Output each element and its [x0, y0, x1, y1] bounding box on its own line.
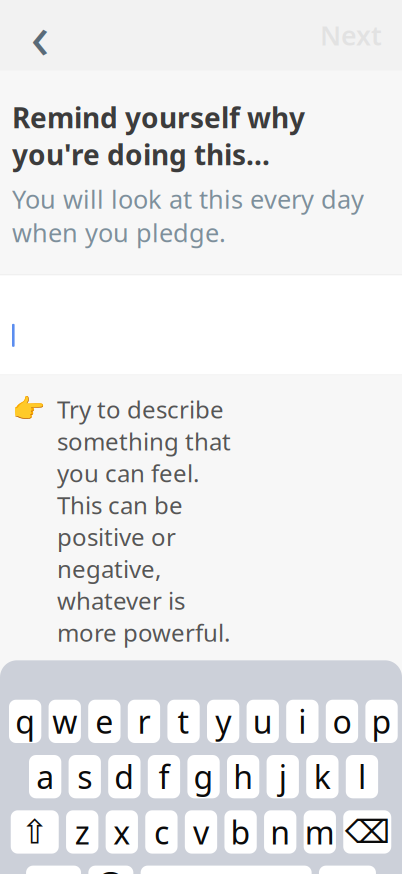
staticText: s — [77, 755, 92, 798]
staticText: e — [95, 700, 113, 743]
button[interactable]: g — [187, 755, 220, 798]
staticText: z — [75, 811, 90, 853]
button[interactable]: x — [106, 810, 138, 854]
staticText: o — [332, 700, 351, 743]
button[interactable]: Numbers — [26, 866, 81, 874]
staticText: ‹ — [30, 0, 49, 76]
button[interactable]: Next — [314, 11, 388, 59]
staticText: Remind yourself why you're doing this... — [12, 99, 305, 173]
staticText: v — [193, 811, 209, 853]
button[interactable]: b — [224, 810, 257, 854]
staticText: r — [137, 700, 150, 743]
button[interactable]: w — [49, 700, 81, 743]
button[interactable]: d — [108, 755, 140, 798]
staticText: p — [371, 700, 391, 743]
button[interactable]: o — [326, 700, 358, 743]
button[interactable]: Back — [14, 9, 66, 61]
button[interactable]: m — [304, 810, 336, 854]
staticText: k — [314, 755, 331, 798]
button[interactable]: Space — [141, 866, 312, 874]
button[interactable]: Text field — [0, 275, 402, 375]
button[interactable]: n — [264, 810, 296, 854]
staticText: t — [177, 700, 189, 743]
button[interactable]: z — [66, 810, 98, 854]
staticText: b — [231, 811, 251, 853]
button[interactable]: a — [29, 755, 61, 798]
button[interactable]: i — [286, 700, 318, 743]
button[interactable]: l — [346, 755, 378, 798]
button[interactable]: Return — [319, 866, 376, 874]
button[interactable]: u — [247, 700, 279, 743]
button[interactable]: Delete — [343, 810, 391, 854]
button[interactable]: p — [365, 700, 398, 743]
button[interactable]: v — [185, 810, 217, 854]
staticText: l — [358, 755, 366, 798]
button[interactable]: f — [148, 755, 180, 798]
button[interactable]: c — [145, 810, 177, 854]
staticText: ☺ — [93, 868, 128, 874]
button[interactable]: k — [306, 755, 338, 798]
staticText: n — [270, 811, 290, 853]
staticText: u — [253, 700, 273, 743]
staticText: h — [233, 755, 253, 798]
button[interactable]: q — [9, 700, 41, 743]
staticText: q — [15, 700, 35, 743]
button[interactable]: h — [227, 755, 259, 798]
button[interactable]: Emoji — [88, 866, 133, 874]
button[interactable]: y — [207, 700, 239, 743]
staticText: g — [193, 755, 213, 798]
staticText: ⌫ — [345, 814, 390, 850]
button[interactable]: s — [69, 755, 101, 798]
staticText: You will look at this every day when you… — [12, 182, 364, 249]
button[interactable]: t — [167, 700, 200, 743]
staticText: m — [305, 811, 335, 853]
staticText: 👉 — [12, 393, 45, 424]
staticText: w — [52, 700, 77, 743]
staticText: y — [215, 700, 231, 743]
button[interactable]: Shift — [11, 810, 59, 854]
button[interactable]: e — [88, 700, 120, 743]
staticText: Try to describe something that you can f… — [57, 393, 231, 648]
staticText: a — [36, 755, 54, 798]
staticText: j — [279, 755, 287, 798]
staticText: i — [298, 700, 306, 743]
staticText: c — [154, 811, 169, 853]
button[interactable]: j — [267, 755, 299, 798]
staticText: Next — [320, 17, 382, 53]
staticText: ⇧ — [21, 813, 49, 851]
button[interactable]: r — [128, 700, 160, 743]
staticText: x — [113, 811, 130, 853]
staticText: d — [114, 755, 134, 798]
staticText: f — [158, 755, 169, 798]
